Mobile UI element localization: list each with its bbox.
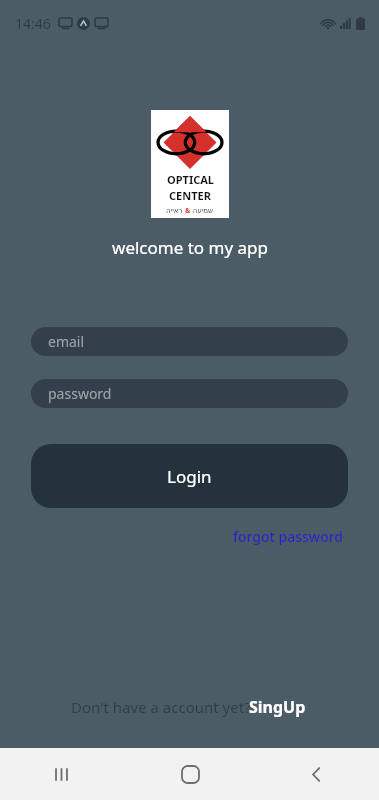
staticText: 14:46	[15, 14, 51, 33]
staticText: שמיעה	[191, 206, 214, 216]
staticText: password	[48, 384, 112, 403]
button[interactable]: Recents	[0, 748, 127, 800]
staticText: ראייה	[166, 206, 185, 216]
staticText: forgot password	[233, 527, 344, 546]
staticText: &	[185, 206, 191, 216]
button[interactable]: Home	[127, 748, 253, 800]
staticText: email	[48, 332, 85, 351]
staticText: Login	[167, 465, 212, 488]
button[interactable]: forgot password	[229, 524, 348, 549]
button[interactable]: email	[31, 327, 348, 356]
staticText: OPTICAL	[167, 172, 214, 187]
button[interactable]: Login	[31, 444, 348, 508]
staticText: welcome to my app	[112, 236, 268, 259]
staticText: Don't have a account yet?	[71, 697, 251, 717]
button[interactable]: Back	[253, 748, 379, 800]
staticText: SingUp	[249, 696, 306, 718]
button[interactable]: SingUp	[249, 696, 306, 718]
staticText: CENTER	[169, 188, 211, 203]
button[interactable]: password	[31, 379, 348, 408]
